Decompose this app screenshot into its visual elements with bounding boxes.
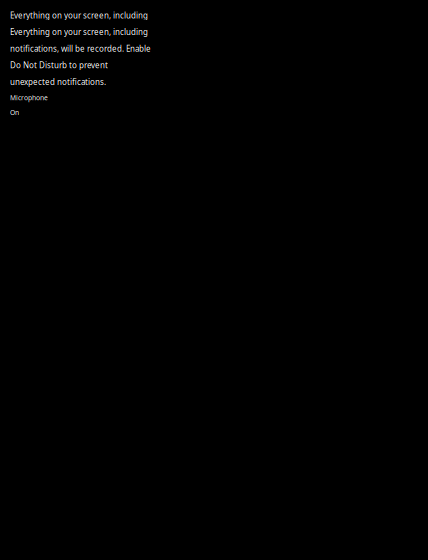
staticText: Everything on your screen, including: [10, 10, 148, 21]
staticText: Microphone: [10, 93, 48, 102]
staticText: On: [10, 108, 19, 117]
staticText: notifications, will be recorded. Enable: [10, 43, 151, 54]
staticText: unexpected notifications.: [10, 76, 106, 87]
staticText: Do Not Disturb to prevent: [10, 60, 108, 70]
staticText: Everything on your screen, including: [10, 27, 148, 37]
